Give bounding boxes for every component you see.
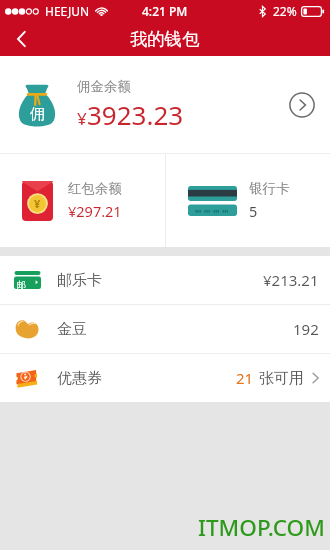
staticText: 3923.23	[87, 97, 184, 132]
staticText: 优惠券	[57, 369, 102, 388]
staticText: 红包余额	[68, 180, 122, 197]
staticText: 5	[249, 201, 258, 221]
staticText: HEEJUN	[45, 3, 90, 19]
staticText: 佣	[30, 105, 45, 124]
staticText: 邮	[17, 279, 26, 290]
staticText: ¥213.21	[263, 270, 319, 290]
button[interactable]: 银行卡	[166, 154, 330, 247]
staticText: 22%	[273, 3, 297, 19]
staticText: ¥	[77, 107, 87, 130]
button[interactable]: 佣	[0, 56, 330, 153]
staticText: ITMOP.COM	[198, 512, 325, 543]
staticText: 银行卡	[249, 180, 290, 197]
staticText: 张可用	[259, 369, 304, 388]
staticText: ¥297.21	[68, 201, 122, 221]
staticText: 邮乐卡	[57, 271, 102, 290]
staticText: 4:21 PM	[142, 3, 188, 19]
button[interactable]: View commission details	[288, 91, 316, 119]
staticText: 金豆	[57, 320, 87, 339]
button[interactable]: 邮	[0, 256, 330, 304]
staticText: 佣金余额	[77, 78, 131, 95]
staticText: 我的钱包	[130, 28, 200, 50]
staticText: 21	[236, 368, 254, 388]
button[interactable]: 金豆	[0, 305, 330, 353]
staticText: ¥	[34, 196, 41, 211]
button[interactable]: ¥	[0, 154, 165, 247]
staticText: 192	[293, 319, 319, 339]
button[interactable]: 优惠券	[0, 354, 330, 402]
button[interactable]: Back	[0, 22, 42, 56]
